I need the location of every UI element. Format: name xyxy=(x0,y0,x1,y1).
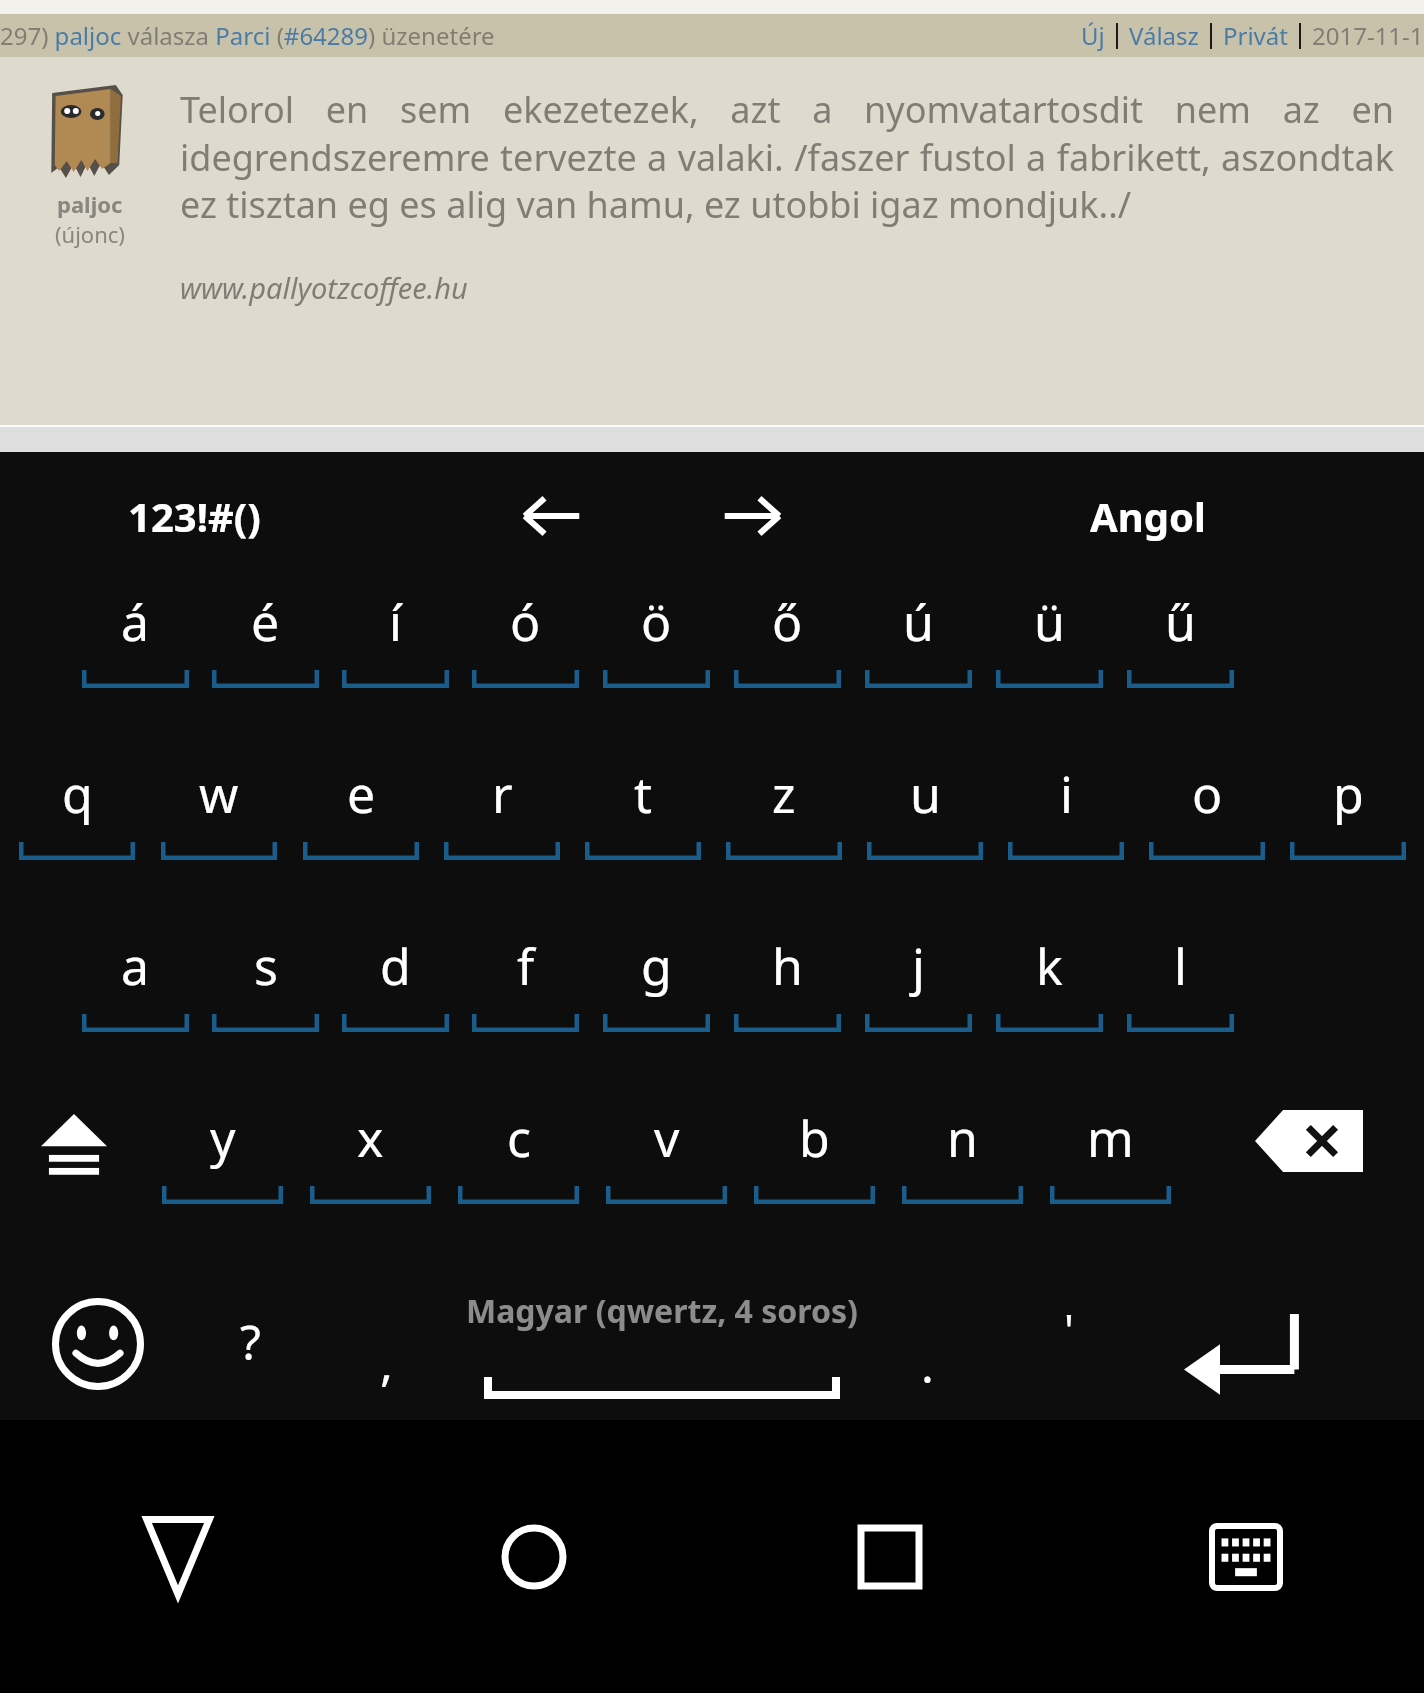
button[interactable]: m xyxy=(1036,1096,1184,1268)
button[interactable]: í xyxy=(330,580,460,752)
button[interactable]: Privát xyxy=(1223,19,1288,52)
staticText: j xyxy=(912,932,925,1000)
button[interactable]: ú xyxy=(853,580,984,752)
button[interactable]: ? xyxy=(230,1299,271,1384)
staticText: x xyxy=(357,1104,384,1172)
staticText: k xyxy=(1036,932,1063,1000)
button[interactable]: r xyxy=(431,752,572,924)
button[interactable]: p xyxy=(1277,752,1418,924)
staticText: n xyxy=(947,1104,978,1172)
button[interactable]: i xyxy=(995,752,1136,924)
staticText: ' xyxy=(1064,1299,1074,1359)
button[interactable]: k xyxy=(984,924,1115,1096)
staticText: . xyxy=(921,1332,934,1397)
staticText: w xyxy=(199,760,239,828)
button[interactable]: o xyxy=(1136,752,1277,924)
staticText: Privát xyxy=(1223,19,1288,52)
staticText: é xyxy=(251,588,280,656)
button[interactable]: ó xyxy=(460,580,591,752)
staticText: ű xyxy=(1165,588,1196,656)
staticText: m xyxy=(1087,1104,1134,1172)
button[interactable]: Recent apps xyxy=(712,1497,1068,1617)
button[interactable]: b xyxy=(740,1096,888,1268)
staticText: l xyxy=(1174,932,1187,1000)
staticText: u xyxy=(910,760,941,828)
staticText: z xyxy=(772,760,796,828)
staticText: ? xyxy=(240,1309,261,1374)
button[interactable]: Move cursor right xyxy=(711,480,793,552)
button[interactable]: Új xyxy=(1081,19,1105,52)
button[interactable]: w xyxy=(148,752,290,924)
button[interactable]: Angol xyxy=(1082,481,1214,551)
button[interactable]: x xyxy=(296,1096,444,1268)
staticText: ü xyxy=(1034,588,1065,656)
staticText: g xyxy=(641,932,672,1000)
button[interactable]: Shift xyxy=(0,1096,148,1268)
staticText: b xyxy=(799,1104,830,1172)
staticText: h xyxy=(772,932,803,1000)
button[interactable]: 123!#() xyxy=(120,481,269,551)
staticText: s xyxy=(254,932,278,1000)
staticText: y xyxy=(210,1104,236,1172)
staticText: p xyxy=(1333,760,1364,828)
button[interactable]: é xyxy=(200,580,330,752)
staticText: r xyxy=(492,760,513,828)
button[interactable]: c xyxy=(444,1096,592,1268)
button[interactable]: q xyxy=(6,752,148,924)
button[interactable]: y xyxy=(148,1096,296,1268)
button[interactable]: h xyxy=(722,924,853,1096)
staticText: 123!#() xyxy=(128,489,261,543)
staticText: a xyxy=(121,932,150,1000)
staticText: Válasz xyxy=(1129,19,1199,52)
button[interactable]: ' xyxy=(1054,1289,1084,1369)
button[interactable]: Backspace xyxy=(1194,1096,1424,1268)
staticText: Új xyxy=(1081,19,1105,52)
button[interactable]: d xyxy=(330,924,460,1096)
button[interactable]: j xyxy=(853,924,984,1096)
button[interactable]: t xyxy=(572,752,713,924)
staticText: e xyxy=(347,760,376,828)
button[interactable]: ő xyxy=(722,580,853,752)
staticText: f xyxy=(517,932,535,1000)
button[interactable]: Switch keyboard xyxy=(1068,1497,1424,1617)
button[interactable]: Enter xyxy=(1184,1309,1304,1393)
staticText: 2017-11-1 xyxy=(1312,19,1424,52)
button[interactable]: ü xyxy=(984,580,1115,752)
staticText: c xyxy=(507,1104,531,1172)
staticText: Magyar (qwertz, 4 soros) xyxy=(466,1289,858,1333)
staticText: , xyxy=(380,1330,393,1395)
staticText: ó xyxy=(510,588,541,656)
staticText: d xyxy=(380,932,411,1000)
button[interactable]: f xyxy=(460,924,591,1096)
button[interactable]: v xyxy=(592,1096,740,1268)
button[interactable]: Válasz xyxy=(1129,19,1199,52)
button[interactable]: . xyxy=(911,1322,944,1407)
button[interactable]: l xyxy=(1115,924,1246,1096)
button[interactable]: Back xyxy=(0,1497,356,1617)
staticText: t xyxy=(634,760,653,828)
staticText: o xyxy=(1192,760,1223,828)
staticText: ö xyxy=(641,588,672,656)
button[interactable]: Move cursor left xyxy=(511,480,593,552)
button[interactable]: ö xyxy=(591,580,722,752)
button[interactable]: á xyxy=(70,580,200,752)
staticText: 297) paljoc válasza Parci (#64289) üzene… xyxy=(0,19,495,52)
staticText: á xyxy=(121,588,150,656)
button[interactable]: u xyxy=(854,752,995,924)
button[interactable]: a xyxy=(70,924,200,1096)
button[interactable]: s xyxy=(200,924,330,1096)
button[interactable]: n xyxy=(888,1096,1036,1268)
staticText: í xyxy=(389,588,402,656)
button[interactable]: e xyxy=(290,752,431,924)
staticText: ő xyxy=(772,588,803,656)
staticText: Angol xyxy=(1090,489,1206,543)
staticText: ú xyxy=(903,588,934,656)
button[interactable]: Magyar (qwertz, 4 soros) xyxy=(466,1289,858,1399)
button[interactable]: ű xyxy=(1115,580,1246,752)
button[interactable]: Home xyxy=(356,1497,712,1617)
staticText: (újonc) xyxy=(55,219,125,249)
button[interactable]: z xyxy=(713,752,854,924)
button[interactable]: , xyxy=(370,1320,403,1405)
button[interactable]: g xyxy=(591,924,722,1096)
button[interactable]: Emoji xyxy=(52,1298,144,1390)
